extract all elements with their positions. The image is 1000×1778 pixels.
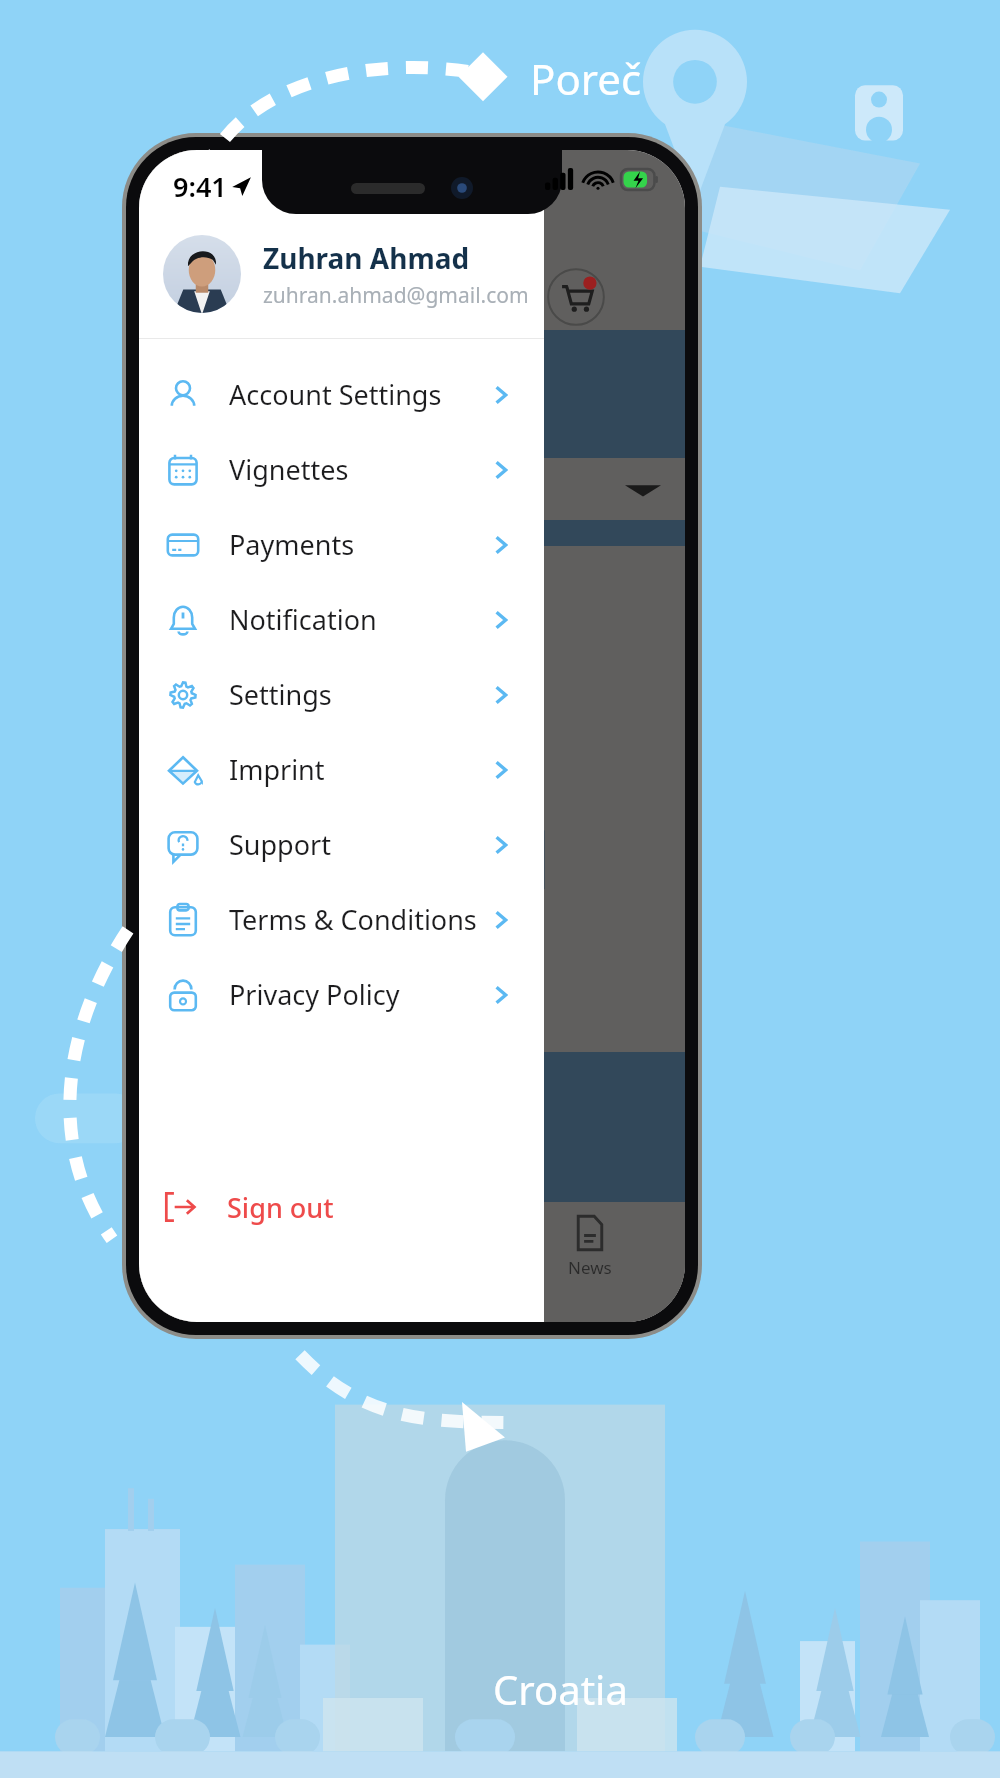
staticText: Support (229, 826, 331, 863)
staticText: Sign out (227, 1189, 334, 1226)
button[interactable]: Privacy Policy (139, 957, 544, 1032)
button[interactable]: Cart (547, 268, 605, 326)
button[interactable]: Notification (139, 582, 544, 657)
staticText: Zuhran Ahmad (263, 239, 470, 277)
button[interactable]: Account Settings (139, 357, 544, 432)
staticText: zuhran.ahmad@gmail.com (263, 281, 529, 310)
button[interactable]: Zuhran Ahmad (163, 226, 544, 322)
staticText: Privacy Policy (229, 976, 400, 1013)
staticText: Terms & Conditions (229, 901, 477, 938)
staticText: Vignettes (229, 451, 349, 488)
staticText: 9:41 (173, 168, 227, 205)
staticText: News (568, 1256, 612, 1279)
staticText: Poreč (530, 50, 642, 107)
button[interactable]: Support (139, 807, 544, 882)
staticText: Imprint (229, 751, 325, 788)
staticText: Payments (229, 526, 355, 563)
button[interactable]: Payments (139, 507, 544, 582)
staticText: Notification (229, 601, 377, 638)
staticText: Account Settings (229, 376, 442, 413)
button[interactable]: Terms & Conditions (139, 882, 544, 957)
staticText: Settings (229, 676, 332, 713)
button[interactable]: Sign out (161, 1170, 544, 1244)
staticText: Croatia (493, 1662, 628, 1716)
button[interactable]: Settings (139, 657, 544, 732)
button[interactable]: Imprint (139, 732, 544, 807)
button[interactable]: Vignettes (139, 432, 544, 507)
